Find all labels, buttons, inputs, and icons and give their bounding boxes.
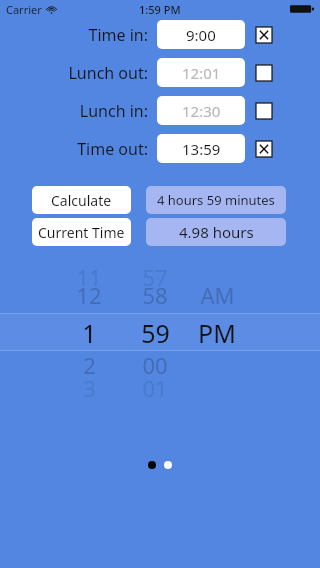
staticText: Time out:: [0, 138, 148, 160]
staticText: 4 hours 59 minutes: [157, 191, 275, 209]
staticText: 12:01: [182, 63, 221, 83]
staticText: Lunch in:: [0, 100, 148, 122]
staticText: Carrier: [6, 2, 42, 17]
staticText: 13:59: [182, 139, 221, 159]
staticText: 12: [76, 280, 102, 310]
staticText: 1: [82, 316, 97, 346]
button[interactable]: 13:59: [157, 134, 245, 163]
staticText: 1:59 PM: [139, 2, 181, 17]
button[interactable]: 12:30: [157, 96, 245, 125]
staticText: 3: [83, 373, 96, 403]
staticText: 58: [142, 280, 168, 310]
button[interactable]: Lunch out: disabled: [256, 65, 272, 81]
button[interactable]: 9:00: [157, 20, 245, 49]
button[interactable]: Time out: enabled: [256, 141, 272, 157]
staticText: 2: [83, 350, 96, 380]
staticText: 12:30: [182, 101, 221, 121]
staticText: 59: [141, 316, 170, 346]
staticText: Current Time: [38, 223, 125, 242]
staticText: PM: [198, 316, 236, 346]
staticText: 9:00: [186, 25, 216, 45]
staticText: 00: [142, 350, 168, 380]
staticText: Lunch out:: [0, 62, 148, 84]
staticText: AM: [200, 280, 235, 310]
staticText: 4.98 hours: [179, 222, 254, 242]
button[interactable]: Lunch in: disabled: [256, 103, 272, 119]
button[interactable]: 12:01: [157, 58, 245, 87]
button[interactable]: Current Time: [32, 218, 131, 246]
button[interactable]: Time in: enabled: [256, 27, 272, 43]
staticText: 57: [142, 262, 168, 292]
staticText: Time in:: [0, 24, 148, 46]
staticText: 01: [142, 373, 168, 403]
button[interactable]: Calculate: [32, 186, 131, 214]
staticText: 11: [76, 262, 102, 292]
staticText: Calculate: [51, 191, 112, 210]
